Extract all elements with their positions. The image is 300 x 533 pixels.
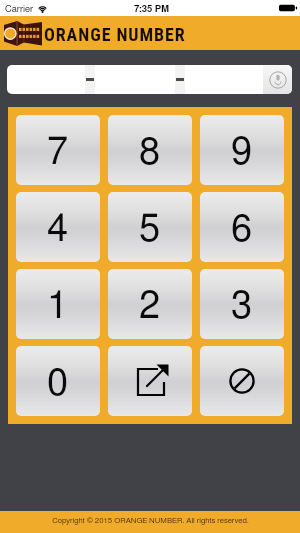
staticText: Copyright © 2015 ORANGE NUMBER. All righ… xyxy=(52,517,249,525)
button[interactable]: 2 xyxy=(108,269,192,339)
button[interactable]: 9 xyxy=(200,115,284,185)
button[interactable]: 4 xyxy=(16,192,100,262)
button[interactable]: 1 xyxy=(16,269,100,339)
staticText: 0 xyxy=(47,365,69,403)
staticText: 5 xyxy=(139,211,161,249)
button[interactable]: Voice input xyxy=(7,65,292,94)
staticText: Carrier xyxy=(5,4,34,13)
staticText: 1 xyxy=(47,288,69,326)
staticText: 3 xyxy=(231,288,253,326)
staticText: 9 xyxy=(231,134,253,172)
button[interactable]: 0 xyxy=(16,346,100,416)
staticText: 2 xyxy=(139,288,161,326)
staticText: 8 xyxy=(139,134,161,172)
button[interactable]: Block xyxy=(200,346,284,416)
button[interactable]: 5 xyxy=(108,192,192,262)
button[interactable]: Share xyxy=(108,346,192,416)
staticText: 4 xyxy=(47,211,69,249)
staticText: 7:35 PM xyxy=(134,4,170,13)
button[interactable]: 6 xyxy=(200,192,284,262)
button[interactable]: Voice input xyxy=(263,65,292,94)
staticText: 7 xyxy=(47,134,69,172)
staticText: ORANGE NUMBER xyxy=(44,24,186,45)
staticText: 6 xyxy=(231,211,253,249)
button[interactable]: 8 xyxy=(108,115,192,185)
button[interactable]: 7 xyxy=(16,115,100,185)
button[interactable]: 3 xyxy=(200,269,284,339)
